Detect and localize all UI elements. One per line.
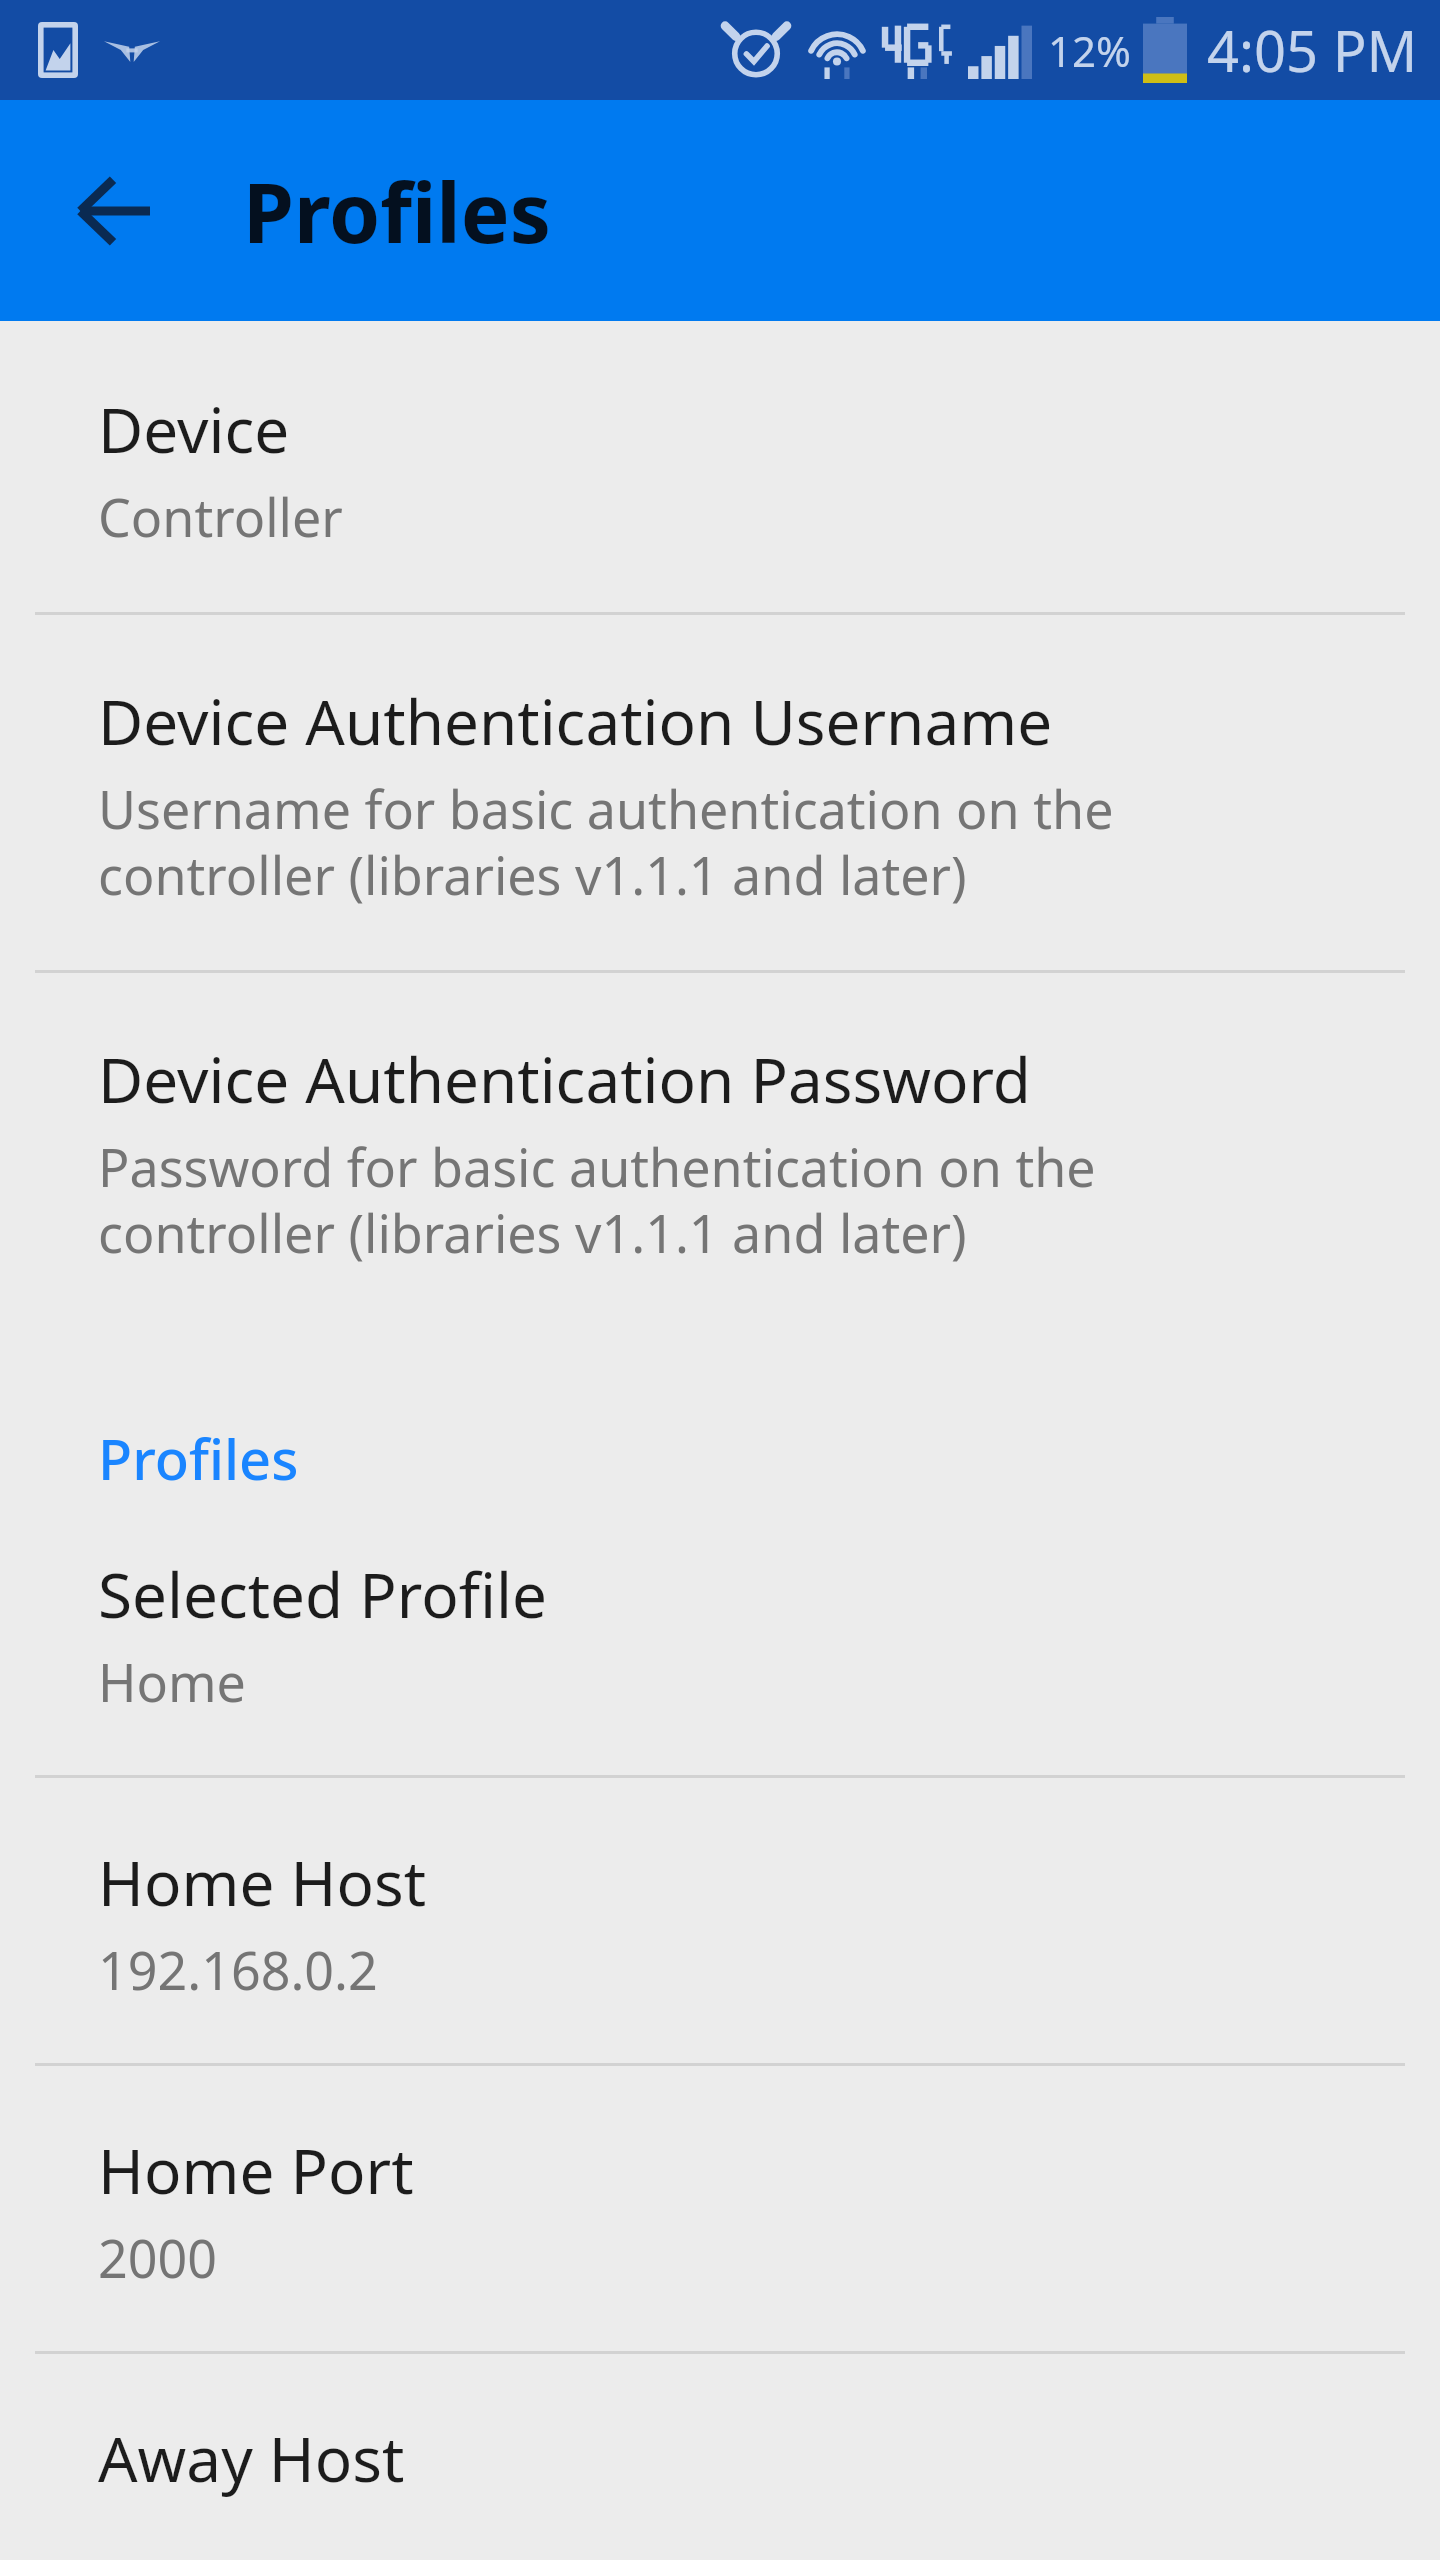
staticText: Home Host — [98, 1840, 427, 1924]
staticText: Device Authentication Password — [98, 1037, 1031, 1121]
staticText: Away Host — [98, 2416, 405, 2500]
staticText: Profiles — [243, 155, 551, 267]
button[interactable]: Selected Profile — [0, 1530, 1440, 1775]
staticText: Home Port — [98, 2128, 414, 2212]
staticText: Password for basic authentication on the… — [98, 1131, 1096, 1268]
button[interactable]: Device — [0, 321, 1440, 612]
staticText: 192.168.0.2 — [98, 1934, 378, 2005]
staticText: Device — [98, 387, 290, 471]
button[interactable]: Home Port — [0, 2066, 1440, 2351]
staticText: 4:05 PM — [1207, 12, 1418, 88]
button[interactable]: Device Authentication Password — [0, 973, 1440, 1328]
button[interactable]: Away Host — [0, 2354, 1440, 2560]
staticText: 2000 — [98, 2222, 217, 2293]
staticText: Device Authentication Username — [98, 679, 1053, 763]
button[interactable]: Back — [28, 126, 198, 296]
button[interactable]: Device Authentication Username — [0, 615, 1440, 970]
staticText: Home — [98, 1646, 246, 1717]
button[interactable]: Home Host — [0, 1778, 1440, 2063]
staticText: Profiles — [98, 1420, 299, 1496]
staticText: 12% — [1048, 22, 1131, 79]
staticText: Controller — [98, 481, 343, 552]
staticText: Selected Profile — [98, 1552, 548, 1636]
staticText: Username for basic authentication on the… — [98, 773, 1114, 910]
